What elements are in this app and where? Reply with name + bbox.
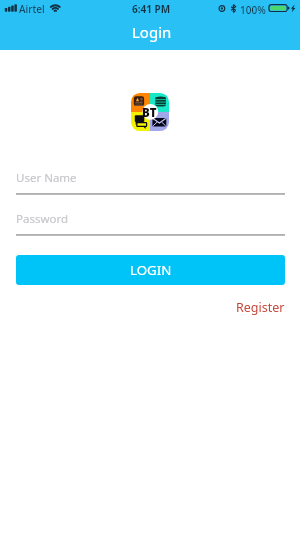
button[interactable]: User Name [16,170,285,195]
button[interactable]: Password [16,211,285,236]
staticText: Login [132,22,172,42]
staticText: BT [142,105,157,121]
button[interactable]: Register [236,299,285,316]
staticText: 100% [240,3,266,17]
staticText: Airtel [19,2,45,16]
staticText: User Name [16,170,77,186]
staticText: 6:41 PM [132,2,171,16]
button[interactable]: LOGIN [16,255,285,285]
staticText: LOGIN [130,261,172,279]
staticText: Password [16,211,69,227]
